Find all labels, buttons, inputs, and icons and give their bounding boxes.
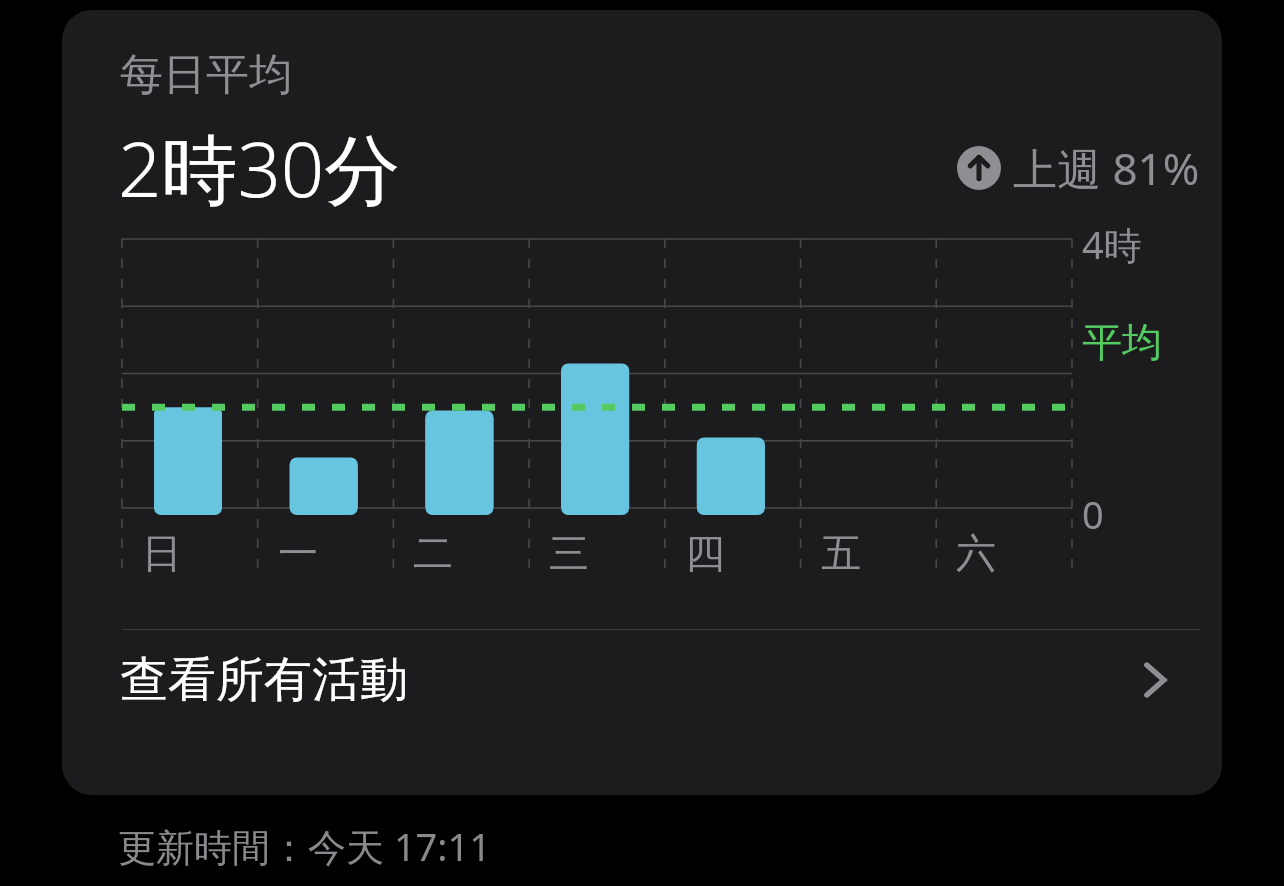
staticText: 日 (142, 528, 182, 578)
staticText: 查看所有活動 (120, 650, 408, 710)
staticText: 每日平均 (120, 48, 292, 102)
button[interactable]: 查看所有活動 (62, 630, 1222, 730)
staticText: 四 (685, 528, 725, 578)
staticText: 三 (549, 528, 589, 578)
staticText: 二 (413, 528, 453, 578)
staticText: 一 (278, 528, 318, 578)
staticText: 4時 (1082, 218, 1142, 270)
staticText: 五 (821, 528, 861, 578)
staticText: 上週 81% (1013, 138, 1200, 198)
other: 查看所有活動 (1138, 663, 1172, 697)
staticText: 0 (1082, 488, 1104, 540)
staticText: 平均 (1082, 317, 1162, 367)
staticText: 六 (956, 528, 996, 578)
staticText: 更新時間：今天 17:11 (118, 820, 492, 872)
staticText: 2時30分 (118, 116, 401, 208)
